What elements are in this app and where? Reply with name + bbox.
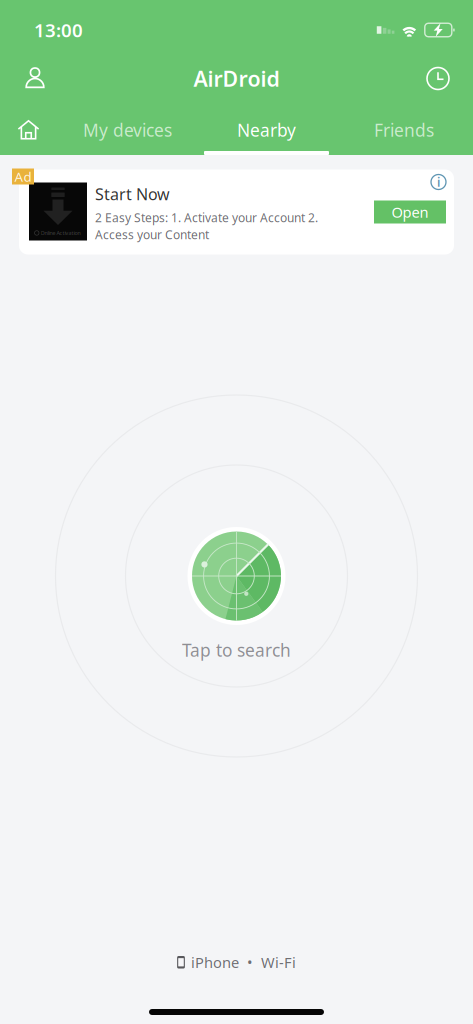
staticText: Ad <box>14 168 31 185</box>
staticText: Tap to search <box>182 638 291 661</box>
staticText: AirDroid <box>193 64 279 93</box>
button[interactable]: Nearby <box>198 105 335 155</box>
staticText: iPhone • Wi-Fi <box>191 952 296 972</box>
button[interactable]: Home <box>0 105 57 155</box>
staticText: 2 Easy Steps: 1. Activate your Account 2… <box>95 210 318 226</box>
staticText: My devices <box>83 118 172 141</box>
staticText: Online Activation <box>40 229 80 236</box>
staticText: Access your Content <box>95 227 209 243</box>
staticText: i <box>437 174 440 190</box>
staticText: Friends <box>374 118 434 141</box>
staticText: Start Now <box>95 183 170 205</box>
button[interactable]: My devices <box>57 105 198 155</box>
staticText: Nearby <box>237 118 296 141</box>
staticText: 13:00 <box>34 18 83 42</box>
button[interactable]: History <box>413 54 463 102</box>
staticText: Open <box>391 202 428 222</box>
button[interactable]: Tap to search <box>187 527 285 625</box>
button[interactable]: Friends <box>335 105 473 155</box>
button[interactable]: Account <box>10 54 60 102</box>
button[interactable]: Ad information <box>428 171 449 192</box>
button[interactable]: Open <box>374 200 446 223</box>
